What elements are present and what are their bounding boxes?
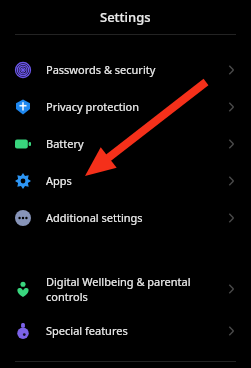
staticText: Privacy protection [46,99,140,114]
staticText: Additional settings [46,210,143,225]
staticText: Special features [46,323,128,338]
button[interactable]: Privacy protection [0,88,251,125]
staticText: Apps [46,173,72,188]
button[interactable]: Passwords & security [0,51,251,88]
staticText: Passwords & security [46,62,156,77]
button[interactable]: Special features [0,312,251,349]
staticText: Battery [46,136,84,151]
staticText: Digital Wellbeing & parental controls [46,274,191,304]
button[interactable]: Digital Wellbeing & parental controls [0,266,251,312]
button[interactable]: Battery [0,125,251,162]
button[interactable]: Apps [0,162,251,199]
button[interactable]: Additional settings [0,199,251,236]
staticText: Settings [100,8,151,26]
